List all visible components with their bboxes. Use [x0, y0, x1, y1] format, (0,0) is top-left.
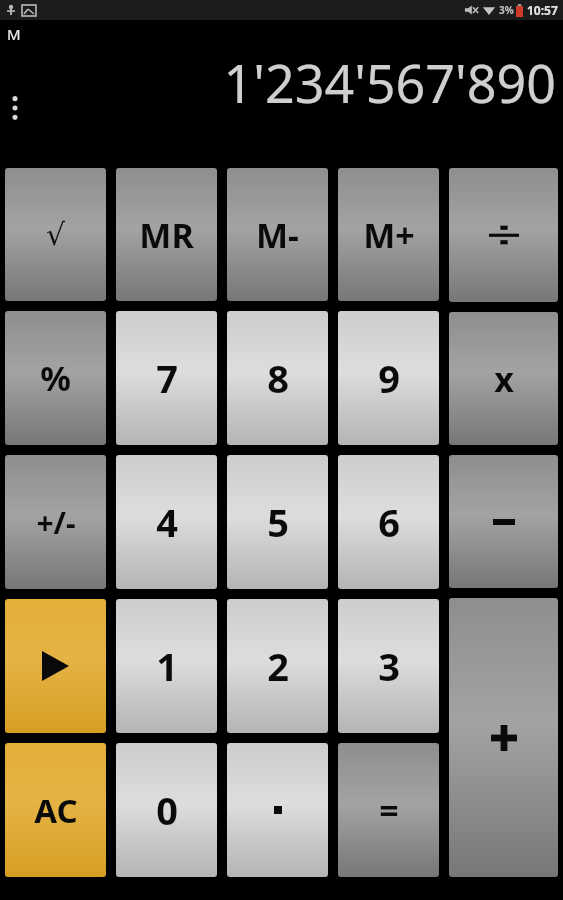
button[interactable]: M-: [227, 168, 328, 301]
button[interactable]: 9: [338, 311, 439, 445]
button[interactable]: M+: [338, 168, 439, 301]
staticText: 9: [378, 352, 400, 404]
button[interactable]: Plus: [449, 598, 558, 877]
button[interactable]: MR: [116, 168, 217, 301]
staticText: √: [46, 217, 66, 252]
button[interactable]: =: [338, 743, 439, 877]
staticText: AC: [34, 788, 78, 833]
button[interactable]: x: [449, 312, 558, 445]
button[interactable]: 4: [116, 455, 217, 589]
staticText: M+: [363, 212, 415, 258]
staticText: =: [379, 787, 399, 833]
button[interactable]: 1: [116, 599, 217, 733]
staticText: 10:57: [527, 2, 558, 18]
button[interactable]: 6: [338, 455, 439, 589]
button[interactable]: 3: [338, 599, 439, 733]
staticText: 7: [156, 352, 178, 404]
button[interactable]: Square root: [5, 168, 106, 301]
staticText: +/-: [36, 502, 76, 543]
staticText: 2: [267, 640, 289, 692]
button[interactable]: 8: [227, 311, 328, 445]
staticText: 0: [156, 784, 178, 836]
staticText: MR: [139, 212, 194, 258]
staticText: 8: [267, 352, 289, 404]
button[interactable]: 2: [227, 599, 328, 733]
button[interactable]: 0: [116, 743, 217, 877]
staticText: x: [494, 356, 514, 402]
button[interactable]: 7: [116, 311, 217, 445]
staticText: 3%: [499, 3, 514, 17]
button[interactable]: AC: [5, 743, 106, 877]
button[interactable]: Decimal point: [227, 743, 328, 877]
staticText: M-: [256, 212, 299, 258]
button[interactable]: More options: [0, 88, 30, 128]
staticText: 5: [267, 496, 289, 548]
button[interactable]: Minus: [449, 455, 558, 588]
button[interactable]: 5: [227, 455, 328, 589]
staticText: 1'234'567'890: [223, 47, 556, 118]
staticText: 3: [378, 640, 400, 692]
button[interactable]: %: [5, 311, 106, 445]
button[interactable]: Execute: [5, 599, 106, 733]
staticText: 6: [378, 496, 400, 548]
staticText: M: [7, 24, 21, 44]
staticText: %: [40, 355, 71, 401]
staticText: 1: [156, 640, 178, 692]
staticText: 4: [156, 496, 178, 548]
button[interactable]: +/-: [5, 455, 106, 589]
button[interactable]: Divide: [449, 168, 558, 302]
